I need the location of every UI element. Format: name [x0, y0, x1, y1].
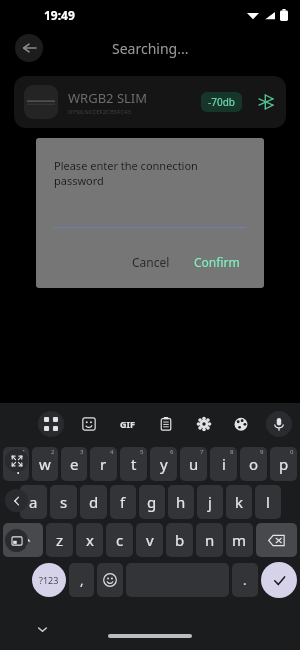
staticText: 4 — [110, 448, 114, 456]
button[interactable]: . — [232, 563, 258, 597]
button[interactable]: Themes — [228, 411, 254, 437]
button[interactable]: z — [46, 523, 73, 557]
staticText: Please enter the connection password — [54, 158, 246, 188]
button[interactable]: j — [197, 485, 223, 519]
button[interactable]: Cancel — [126, 250, 176, 274]
staticText: 3 — [80, 448, 84, 456]
button[interactable]: , — [69, 563, 94, 597]
button[interactable] — [54, 214, 246, 228]
staticText: 8 — [230, 448, 234, 456]
staticText: k — [235, 492, 244, 512]
button[interactable]: g — [139, 485, 165, 519]
button[interactable]: Voice input — [266, 411, 292, 437]
staticText: h — [176, 492, 186, 512]
staticText: v — [146, 530, 154, 550]
button[interactable]: v — [136, 523, 163, 557]
button[interactable]: Floating keyboard — [5, 529, 28, 552]
button[interactable]: s — [50, 485, 77, 519]
button[interactable]: k — [226, 485, 252, 519]
staticText: 7 — [200, 448, 204, 456]
staticText: d — [89, 492, 99, 512]
staticText: 9 — [260, 448, 264, 456]
button[interactable]: m — [226, 523, 253, 557]
staticText: DYSILNCCEF2CB5FC43 — [68, 108, 131, 116]
staticText: s — [60, 492, 68, 512]
staticText: o — [249, 454, 259, 474]
staticText: e — [70, 454, 79, 474]
staticText: a — [29, 492, 38, 512]
staticText: p — [279, 454, 289, 474]
button[interactable]: o — [240, 447, 267, 481]
button[interactable]: Hide keyboard — [30, 617, 54, 641]
staticText: j — [208, 492, 212, 512]
button[interactable]: w — [32, 447, 58, 481]
staticText: 0 — [290, 448, 294, 456]
staticText: z — [56, 530, 64, 550]
button[interactable]: WRGB2 SLIM — [14, 76, 286, 128]
staticText: r — [100, 454, 107, 474]
button[interactable]: Resize keyboard — [5, 449, 28, 472]
button[interactable]: Clipboard — [153, 411, 179, 437]
staticText: b — [175, 530, 185, 550]
staticText: t — [131, 454, 137, 474]
button[interactable]: l — [255, 485, 281, 519]
staticText: Confirm — [194, 254, 240, 270]
button[interactable]: d — [80, 485, 107, 519]
staticText: l — [266, 492, 270, 512]
button[interactable]: q — [3, 447, 29, 481]
button[interactable]: b — [166, 523, 193, 557]
staticText: m — [232, 530, 247, 550]
staticText: 6 — [170, 448, 174, 456]
button[interactable]: f — [110, 485, 136, 519]
staticText: Cancel — [132, 254, 170, 270]
staticText: , — [80, 571, 84, 589]
button[interactable]: u — [180, 447, 207, 481]
button[interactable]: x — [76, 523, 103, 557]
staticText: 2 — [51, 448, 55, 456]
button[interactable]: y — [150, 447, 177, 481]
button[interactable]: Confirm — [188, 250, 246, 274]
button[interactable]: a — [20, 485, 47, 519]
button[interactable]: n — [196, 523, 223, 557]
staticText: WRGB2 SLIM — [68, 89, 148, 107]
button[interactable]: Clipboard grid — [38, 411, 64, 437]
staticText: x — [86, 530, 94, 550]
staticText: 19:49 — [44, 7, 75, 23]
button[interactable]: Enter — [261, 562, 297, 598]
staticText: i — [222, 454, 226, 474]
staticText: w — [39, 454, 51, 474]
staticText: f — [120, 492, 126, 512]
button[interactable]: Backspace — [256, 523, 297, 557]
button[interactable]: e — [61, 447, 87, 481]
staticText: c — [116, 530, 124, 550]
button[interactable]: p — [270, 447, 297, 481]
staticText: q — [11, 454, 21, 474]
staticText: g — [147, 492, 157, 512]
button[interactable]: c — [106, 523, 133, 557]
staticText: ?123 — [39, 574, 59, 586]
staticText: y — [160, 454, 168, 474]
staticText: -70db — [208, 95, 235, 109]
button[interactable]: t — [120, 447, 147, 481]
button[interactable]: Symbols — [32, 563, 66, 597]
staticText: Searching... — [112, 39, 189, 58]
staticText: u — [189, 454, 199, 474]
button[interactable]: Settings — [191, 411, 217, 437]
button[interactable]: Bluetooth — [256, 92, 276, 112]
button[interactable]: Emoji — [97, 563, 123, 597]
button[interactable]: h — [168, 485, 194, 519]
button[interactable]: GIF — [113, 410, 141, 438]
button[interactable]: i — [210, 447, 237, 481]
button[interactable]: r — [90, 447, 117, 481]
button[interactable]: Stickers — [76, 411, 102, 437]
staticText: 5 — [140, 448, 144, 456]
button[interactable]: Move left — [5, 489, 28, 512]
button[interactable]: Back — [15, 34, 43, 62]
staticText: . — [243, 571, 247, 589]
button[interactable]: Shift — [3, 523, 43, 557]
staticText: GIF — [120, 418, 135, 430]
staticText: n — [205, 530, 215, 550]
staticText: 1 — [22, 448, 26, 456]
